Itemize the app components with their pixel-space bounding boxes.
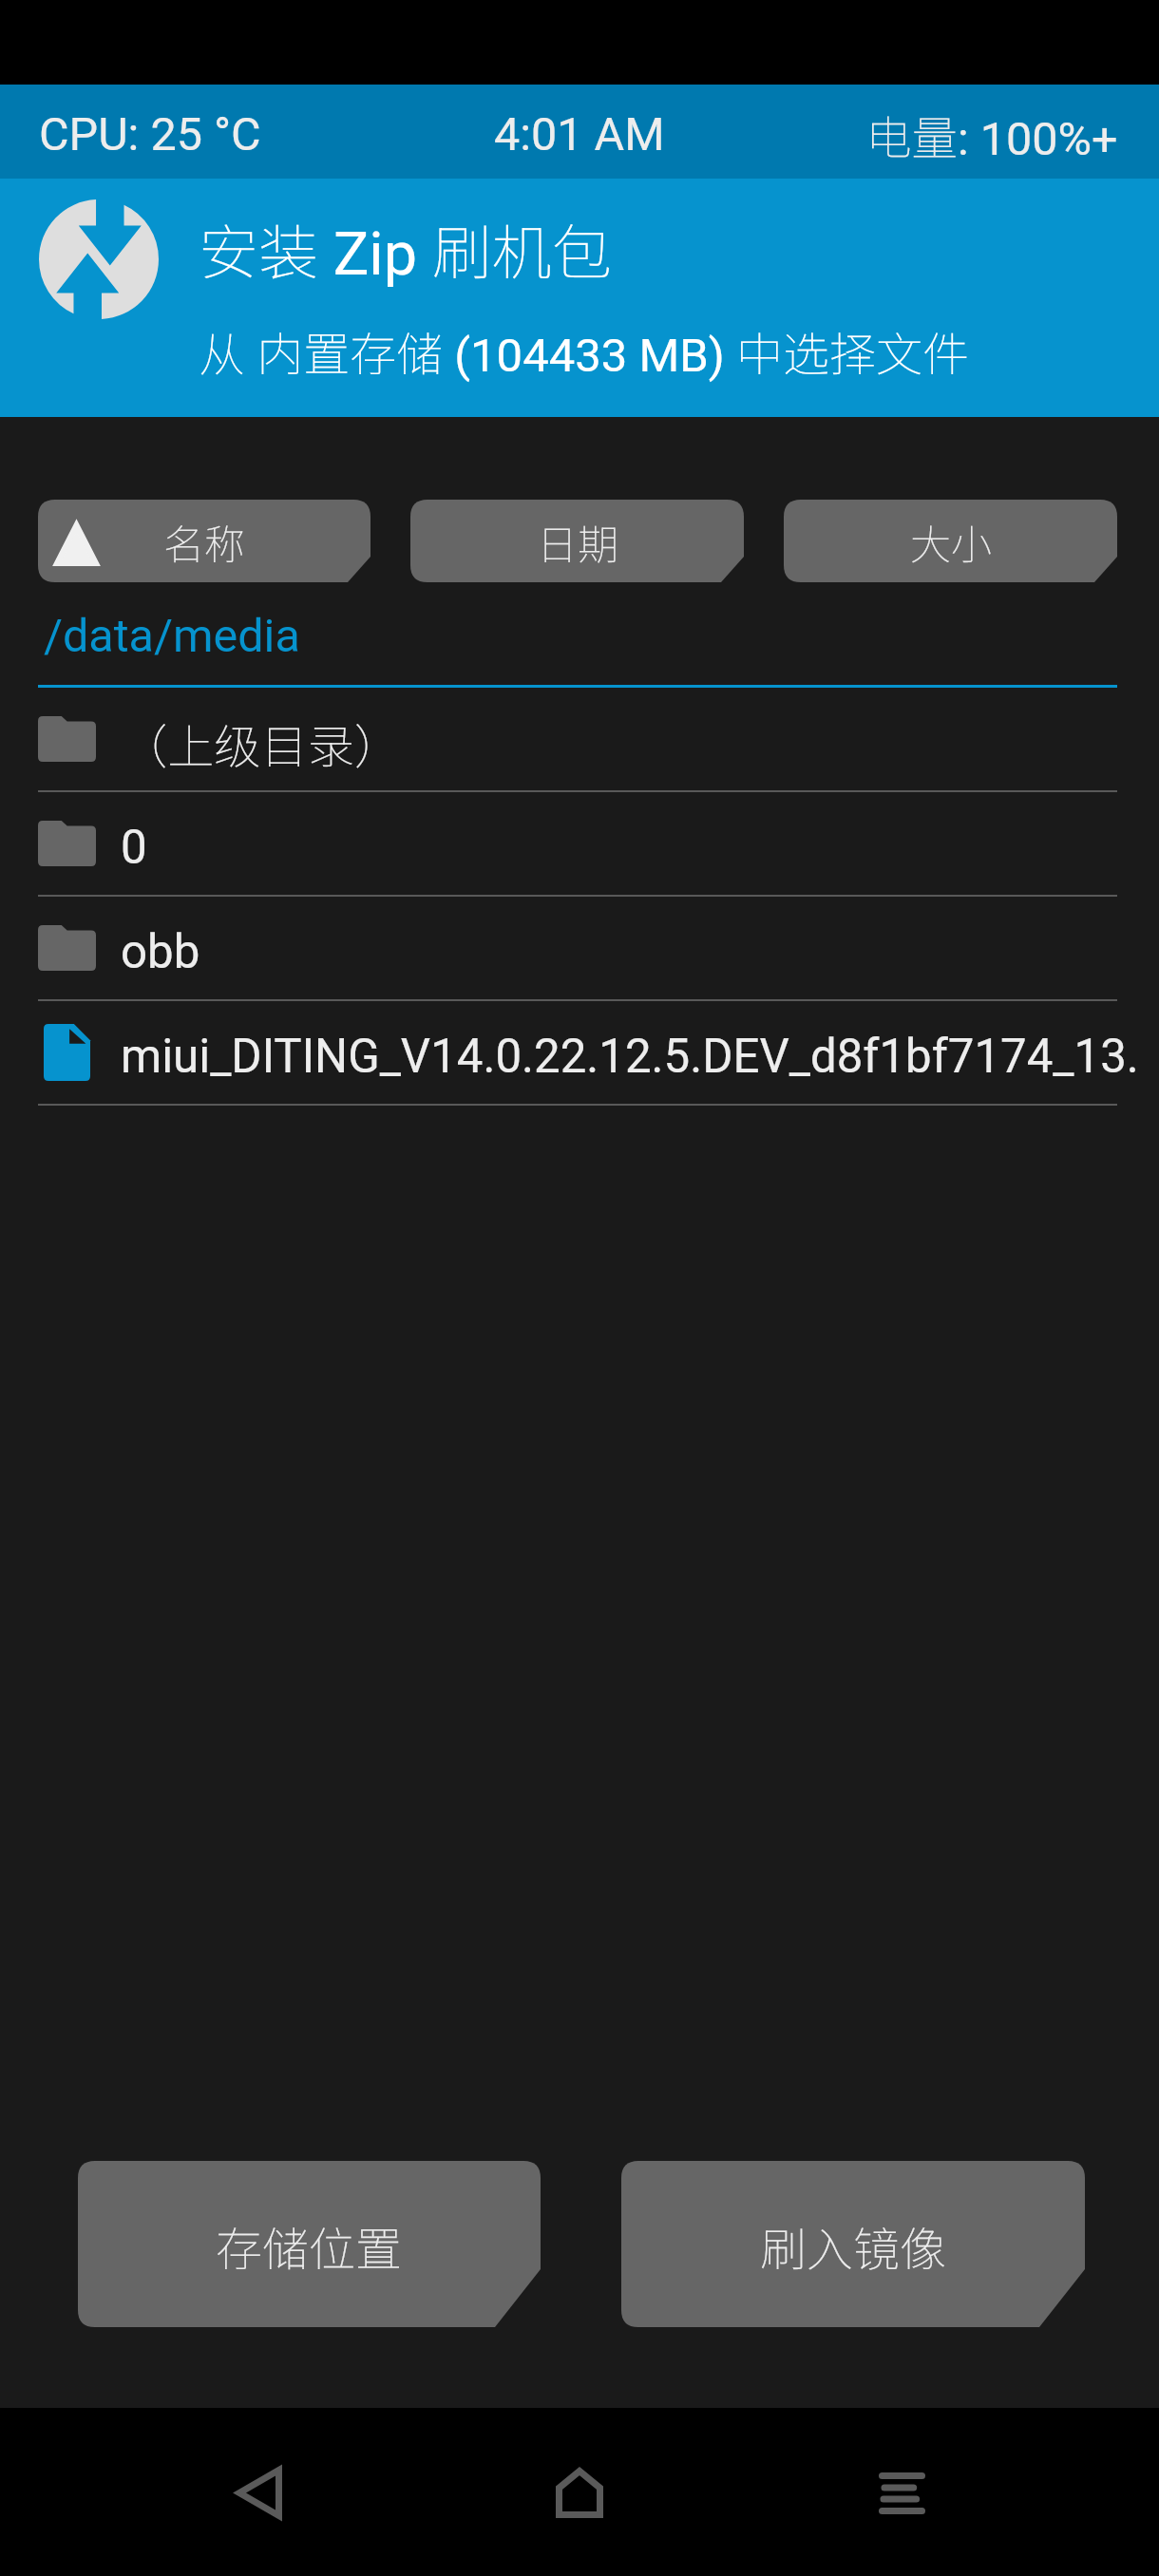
button[interactable]: 0	[0, 792, 1159, 895]
staticText: 安装 Zip 刷机包	[199, 205, 612, 292]
button[interactable]: （上级目录）	[0, 688, 1159, 790]
staticText: 大小	[910, 512, 992, 571]
staticText: 0	[121, 820, 147, 875]
staticText: obb	[121, 924, 200, 979]
staticText: miui_DITING_V14.0.22.12.5.DEV_d8f1bf7174…	[121, 1029, 1139, 1084]
staticText: 电量: 100%+	[865, 102, 1118, 168]
button[interactable]: 存储位置	[78, 2161, 541, 2327]
button[interactable]: miui_DITING_V14.0.22.12.5.DEV_d8f1bf7174…	[0, 1001, 1159, 1104]
staticText: CPU: 25 °C	[39, 107, 261, 161]
staticText: 存储位置	[216, 2212, 403, 2280]
button[interactable]: Menu	[840, 2431, 963, 2554]
staticText: /data/media	[44, 609, 300, 663]
button[interactable]: 日期	[410, 500, 744, 582]
button[interactable]: 名称	[38, 500, 370, 582]
staticText: 从 内置存储 (104433 MB) 中选择文件	[199, 317, 969, 385]
button[interactable]: Home	[518, 2431, 641, 2554]
staticText: 刷入镜像	[760, 2212, 947, 2280]
staticText: （上级目录）	[121, 710, 402, 777]
staticText: 4:01 AM	[494, 107, 665, 161]
button[interactable]: obb	[0, 897, 1159, 999]
staticText: 名称	[163, 512, 245, 571]
button[interactable]: Back	[197, 2431, 320, 2554]
button[interactable]: 刷入镜像	[621, 2161, 1085, 2327]
staticText: 日期	[537, 512, 618, 571]
button[interactable]: 大小	[784, 500, 1117, 582]
